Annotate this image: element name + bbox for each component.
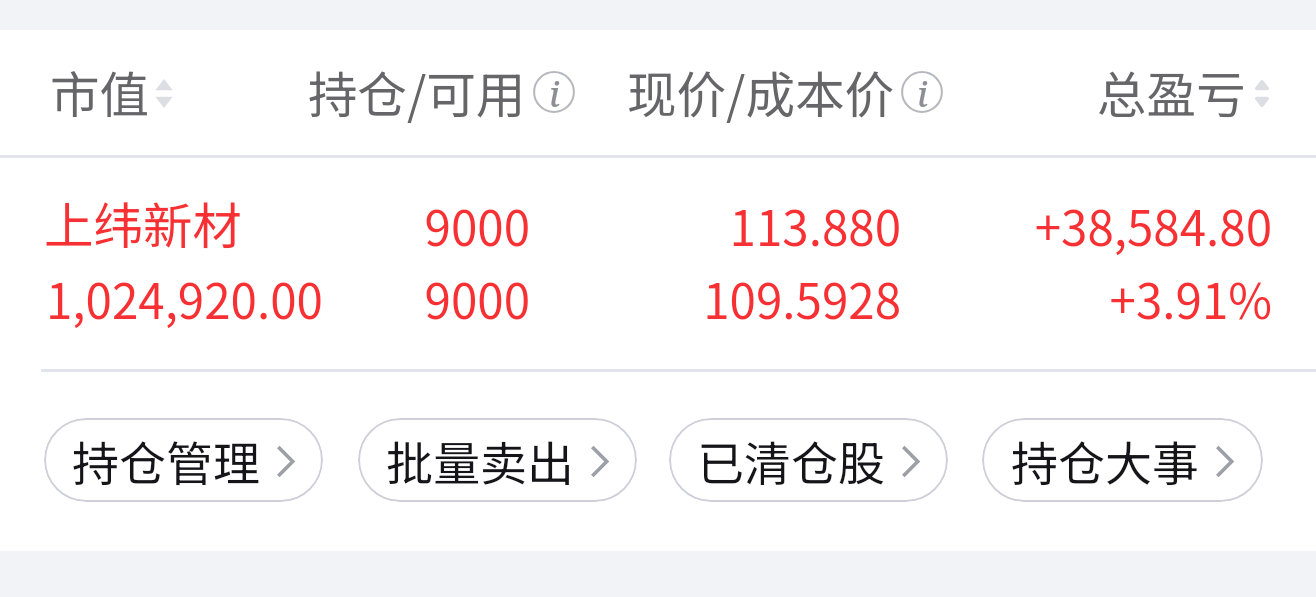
- button[interactable]: 持仓管理: [44, 418, 323, 502]
- staticText: 113.880: [650, 191, 901, 260]
- staticText: i: [549, 70, 560, 112]
- staticText: i: [917, 70, 928, 112]
- staticText: 上纬新材: [44, 187, 242, 259]
- button[interactable]: 现价/成本价: [627, 56, 943, 128]
- staticText: +38,584.80: [950, 191, 1272, 260]
- button[interactable]: 总盈亏: [1097, 56, 1269, 128]
- staticText: 9000: [300, 264, 530, 333]
- staticText: 市值: [50, 56, 149, 128]
- staticText: +3.91%: [950, 264, 1272, 333]
- button[interactable]: 持仓大事: [982, 418, 1263, 502]
- button[interactable]: 批量卖出: [358, 418, 637, 502]
- button[interactable]: 现价/成本价说明: [901, 71, 943, 113]
- staticText: 1,024,920.00: [46, 264, 323, 333]
- staticText: 持仓管理: [72, 426, 260, 494]
- staticText: 持仓/可用: [308, 56, 526, 128]
- staticText: 109.5928: [650, 264, 901, 333]
- button[interactable]: 上纬新材: [0, 160, 1316, 368]
- staticText: 已清仓股: [697, 426, 885, 494]
- staticText: 9000: [300, 191, 530, 260]
- button[interactable]: 持仓/可用说明: [533, 71, 575, 113]
- button[interactable]: 持仓/可用: [308, 56, 575, 128]
- staticText: 现价/成本价: [627, 56, 894, 128]
- staticText: 总盈亏: [1097, 56, 1246, 128]
- button[interactable]: 已清仓股: [669, 418, 948, 502]
- staticText: 批量卖出: [386, 426, 574, 494]
- button[interactable]: 市值: [50, 56, 171, 128]
- staticText: 持仓大事: [1011, 426, 1199, 494]
